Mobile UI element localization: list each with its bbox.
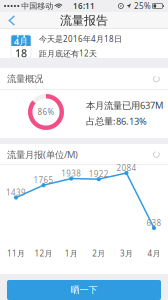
staticText: 3月 <box>120 248 133 259</box>
staticText: 1月 <box>65 248 78 259</box>
staticText: 2月 <box>92 248 105 259</box>
staticText: 18 <box>15 46 27 58</box>
staticText: 1765 <box>34 175 54 185</box>
staticText: 占总量:86.13% <box>86 115 147 127</box>
button[interactable]: 晒一下 <box>7 280 161 300</box>
staticText: 晒一下 <box>70 284 97 296</box>
staticText: 流量报告 <box>60 13 108 28</box>
staticText: 距月底还有12天 <box>39 48 97 59</box>
staticText: 16:11 <box>73 1 95 11</box>
staticText: 12月 <box>35 248 53 259</box>
staticText: 25% <box>134 1 151 11</box>
staticText: 2084 <box>116 162 136 173</box>
staticText: 11月 <box>7 248 25 259</box>
staticText: 本月流量已用637M <box>86 99 163 111</box>
staticText: 1439 <box>6 187 26 198</box>
staticText: 638 <box>146 217 161 228</box>
staticText: 今天是2016年4月18日 <box>39 33 122 44</box>
staticText: 86% <box>37 107 54 117</box>
staticText: 4月 <box>14 35 28 46</box>
staticText: 流量概况 <box>7 73 43 85</box>
staticText: 1938 <box>61 168 81 179</box>
staticText: 流量月报(单位/M) <box>7 148 78 161</box>
staticText: 中国移动 <box>19 1 53 11</box>
button[interactable]: Back <box>0 12 32 29</box>
staticText: 1922 <box>89 169 109 179</box>
staticText: 4月 <box>147 248 160 259</box>
